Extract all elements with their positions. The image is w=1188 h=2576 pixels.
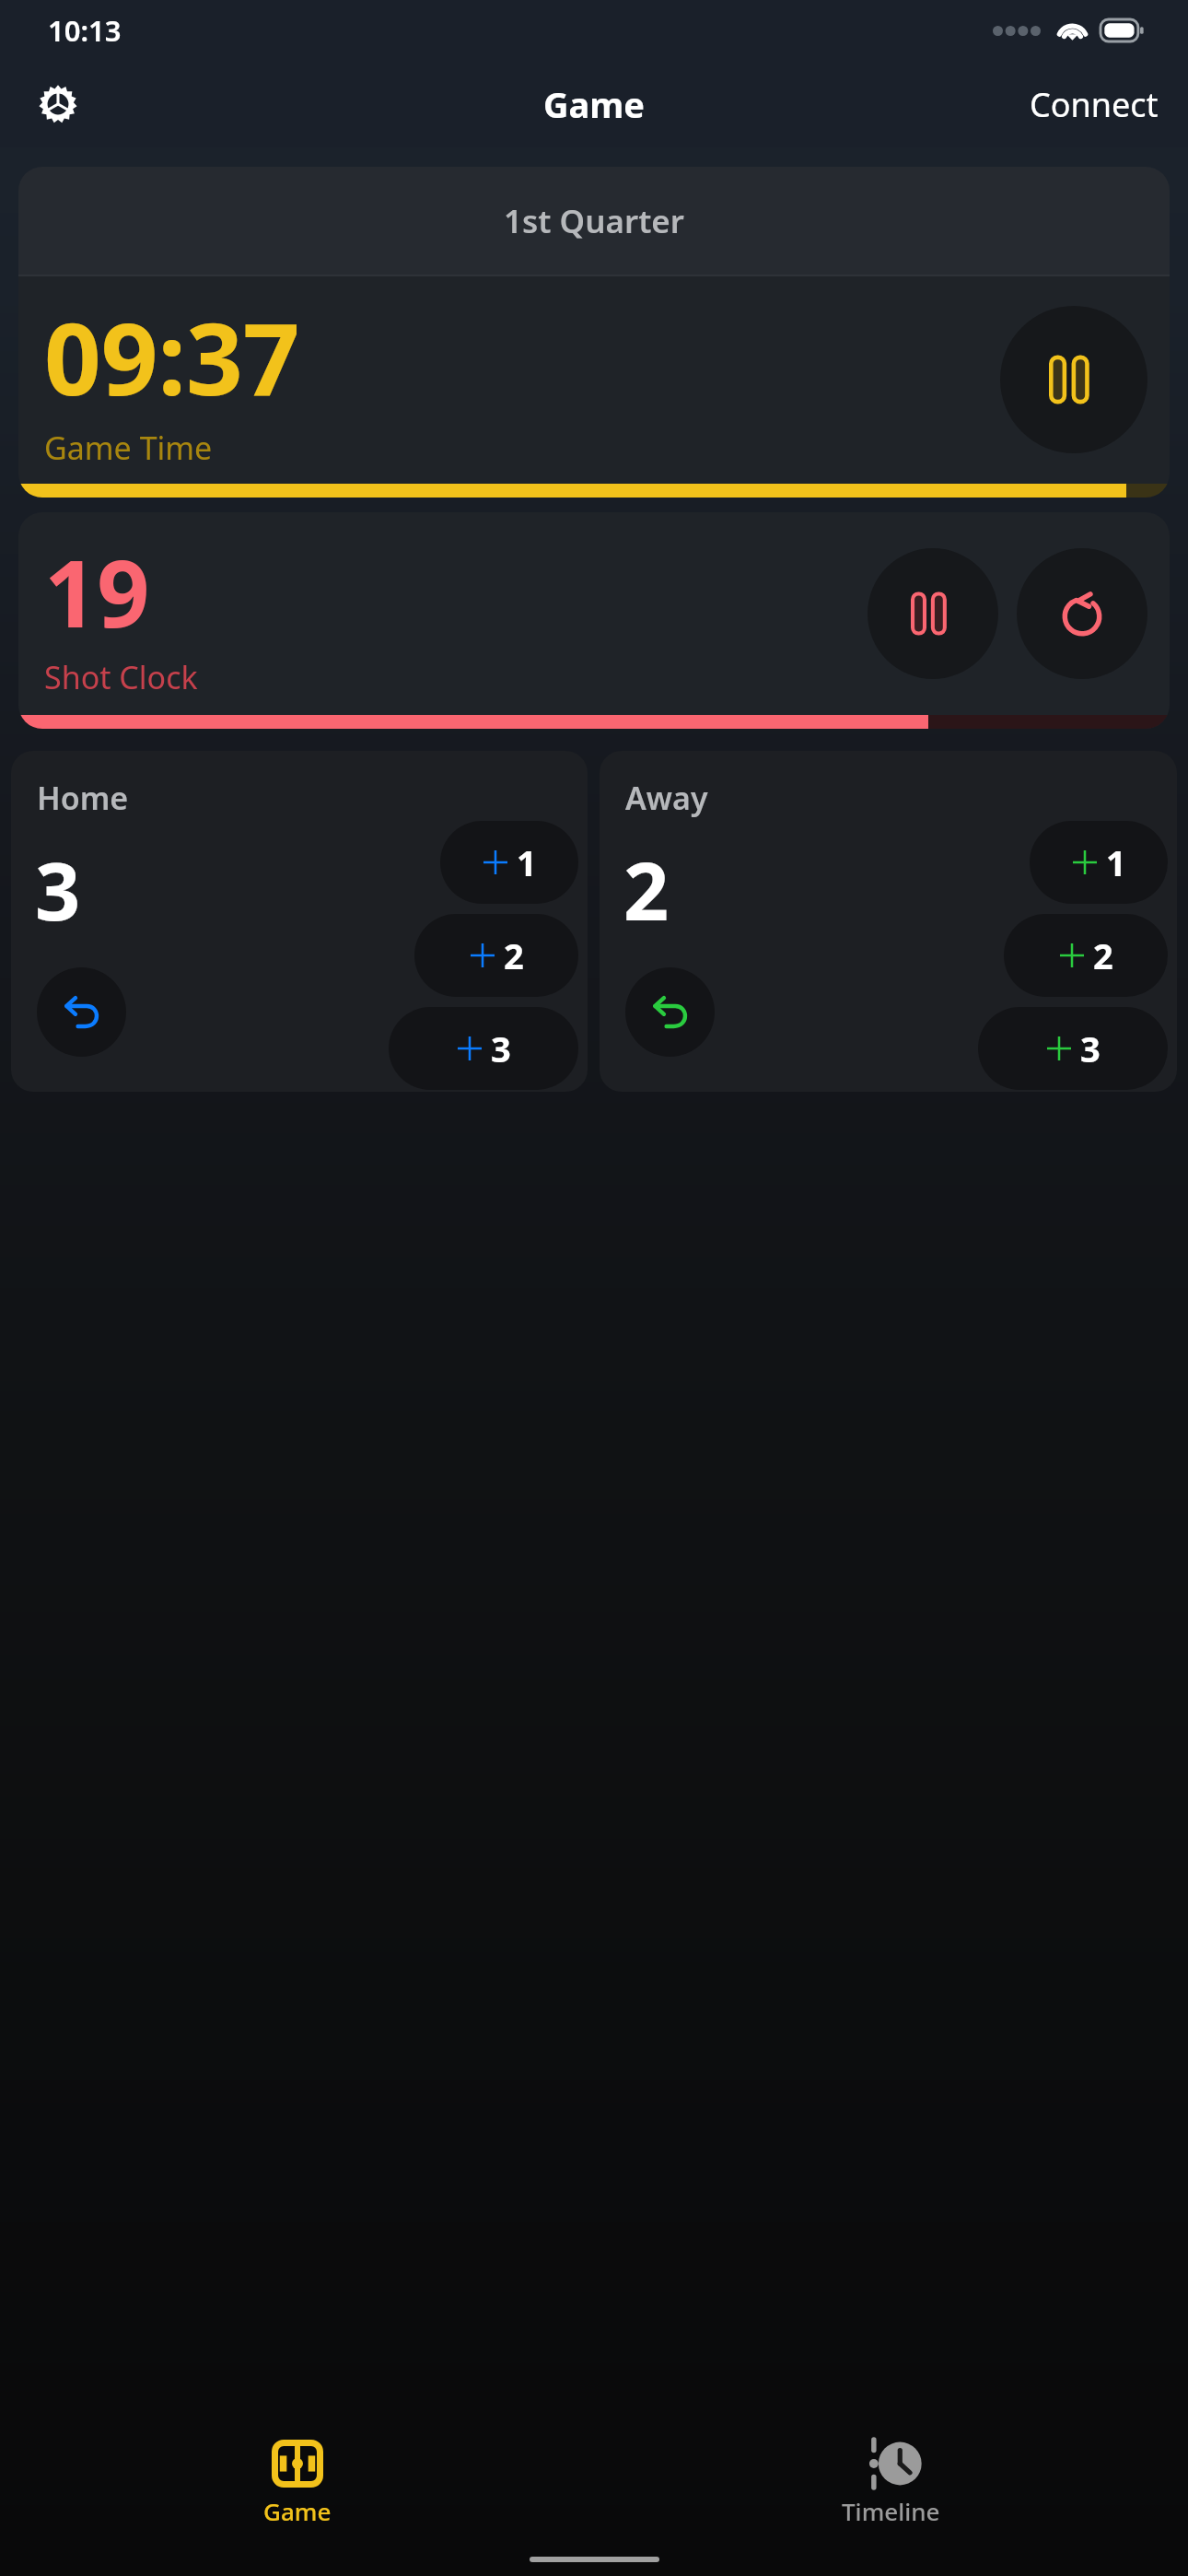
button[interactable]: Reset shot clock bbox=[1017, 548, 1147, 679]
staticText: 2 bbox=[504, 931, 524, 979]
staticText: 3 bbox=[35, 836, 81, 943]
staticText: 3 bbox=[491, 1025, 511, 1072]
staticText: 3 bbox=[1080, 1025, 1101, 1072]
staticText: Game bbox=[543, 80, 646, 128]
button[interactable]: Undo Away score bbox=[625, 967, 715, 1057]
staticText: 09:37 bbox=[44, 289, 300, 425]
button[interactable]: Connect bbox=[1017, 73, 1171, 136]
staticText: 2 bbox=[1093, 931, 1113, 979]
staticText: Timeline bbox=[842, 2495, 940, 2527]
staticText: Game Time bbox=[44, 427, 213, 469]
button[interactable]: Pause game clock bbox=[1000, 306, 1147, 453]
staticText: Home bbox=[37, 777, 129, 819]
button[interactable]: 3 bbox=[978, 1007, 1168, 1090]
staticText: 1st Quarter bbox=[504, 199, 685, 243]
staticText: Connect bbox=[1030, 82, 1159, 127]
staticText: 10:13 bbox=[48, 11, 122, 50]
staticText: 1 bbox=[1106, 838, 1126, 886]
button[interactable]: 3 bbox=[389, 1007, 578, 1090]
button[interactable]: 2 bbox=[1004, 914, 1168, 997]
button[interactable]: Timeline bbox=[594, 2423, 1188, 2543]
staticText: 2 bbox=[623, 836, 670, 943]
button[interactable]: Settings bbox=[22, 68, 94, 140]
button[interactable]: 1 bbox=[440, 821, 578, 904]
button[interactable]: Game bbox=[0, 2423, 594, 2543]
button[interactable]: Undo Home score bbox=[37, 967, 126, 1057]
staticText: Away bbox=[625, 777, 708, 819]
staticText: Game bbox=[263, 2495, 332, 2527]
staticText: 19 bbox=[44, 529, 150, 654]
button[interactable]: 1 bbox=[1030, 821, 1168, 904]
staticText: 1 bbox=[517, 838, 537, 886]
staticText: Shot Clock bbox=[44, 656, 198, 698]
button[interactable]: 2 bbox=[414, 914, 578, 997]
button[interactable]: Pause shot clock bbox=[868, 548, 998, 679]
